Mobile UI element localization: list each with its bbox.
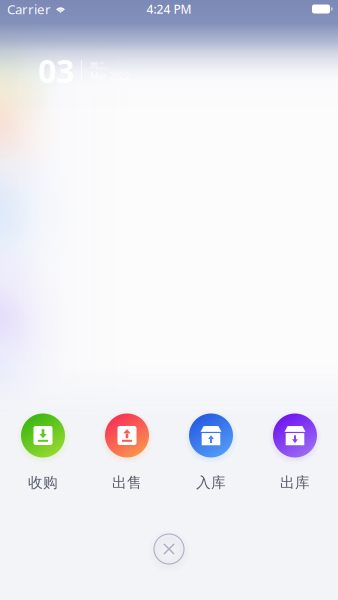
staticText: 4:24 PM bbox=[146, 1, 191, 17]
button[interactable]: 入库 bbox=[169, 408, 253, 491]
staticText: Carrier bbox=[7, 0, 51, 18]
staticText: Mar 2022 bbox=[90, 70, 129, 82]
button[interactable]: 出售 bbox=[85, 408, 169, 491]
button[interactable]: Close bbox=[147, 527, 191, 571]
button[interactable]: 收购 bbox=[1, 408, 85, 491]
staticText: 出库 bbox=[280, 473, 310, 491]
staticText: 03 bbox=[38, 49, 74, 92]
staticText: 入库 bbox=[196, 473, 226, 491]
staticText: 收购 bbox=[28, 473, 58, 491]
button[interactable]: 出库 bbox=[253, 408, 337, 491]
staticText: 出售 bbox=[112, 473, 142, 491]
staticText: 周二 bbox=[90, 61, 106, 70]
